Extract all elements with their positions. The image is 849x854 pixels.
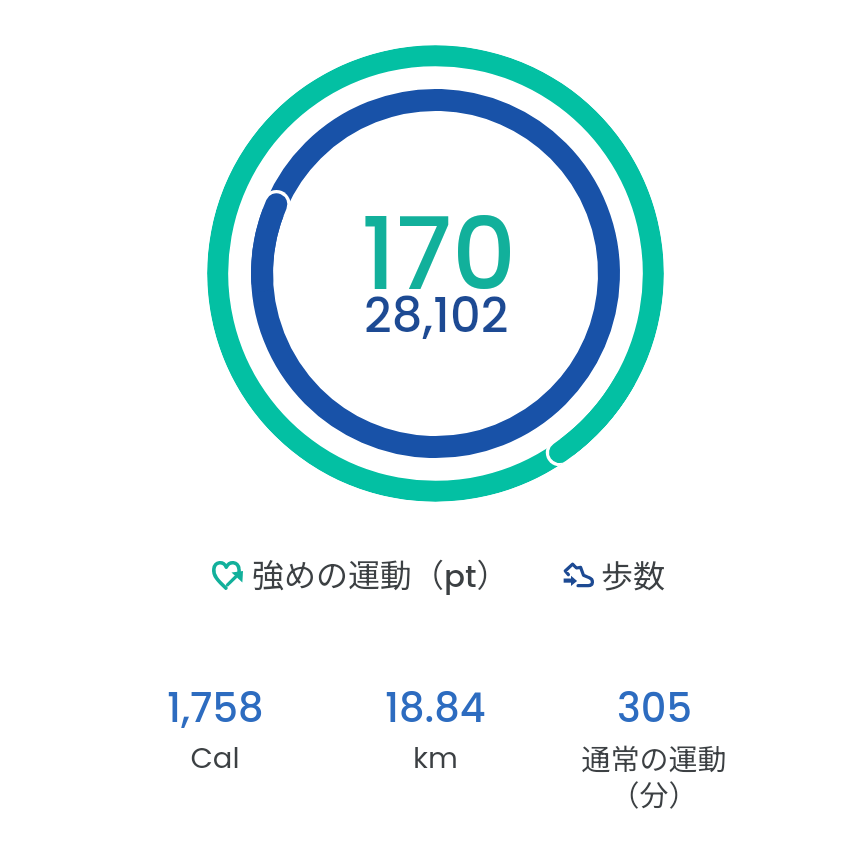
button[interactable]: Steps: [563, 551, 666, 597]
button[interactable]: 18.84: [325, 680, 545, 779]
button[interactable]: Heart Points: [212, 550, 509, 598]
button[interactable]: 1,758: [105, 680, 325, 779]
button[interactable]: Daily activity rings: [207, 45, 664, 502]
staticText: 18.84: [385, 680, 486, 736]
other: Steps: [563, 559, 595, 589]
staticText: 1,758: [167, 680, 264, 736]
button[interactable]: 305: [544, 680, 764, 814]
staticText: km: [413, 738, 458, 779]
staticText: 強めの運動（pt）: [252, 550, 509, 598]
staticText: 305: [617, 680, 692, 736]
staticText: 歩数: [601, 551, 666, 597]
staticText: 170: [361, 184, 517, 324]
staticText: 通常の運動 （分）: [581, 736, 727, 814]
other: Heart Points: [212, 559, 243, 589]
staticText: Cal: [190, 738, 240, 779]
staticText: 28,102: [364, 282, 509, 349]
